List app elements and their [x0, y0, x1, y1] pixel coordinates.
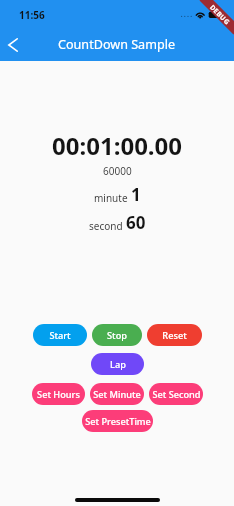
button[interactable]: Start: [33, 324, 87, 346]
button[interactable]: Set Second: [149, 383, 203, 405]
button[interactable]: Lap: [91, 353, 144, 375]
button[interactable]: Back: [0, 28, 26, 61]
staticText: CountDown Sample: [58, 36, 176, 53]
staticText: Reset: [162, 329, 187, 342]
staticText: second: [89, 219, 123, 233]
staticText: Lap: [110, 358, 126, 371]
button[interactable]: Set Minute: [90, 383, 144, 405]
staticText: 1: [131, 183, 141, 206]
button[interactable]: Stop: [92, 324, 142, 346]
staticText: Start: [49, 329, 71, 342]
staticText: Set Hours: [37, 388, 80, 401]
button[interactable]: Set Hours: [32, 383, 85, 405]
staticText: Stop: [107, 329, 127, 342]
button[interactable]: Set PresetTime: [82, 410, 153, 432]
staticText: Set Second: [152, 388, 201, 401]
staticText: DEBUG: [208, 3, 232, 27]
staticText: minute: [94, 191, 128, 205]
staticText: Set Minute: [93, 388, 141, 401]
staticText: 11:56: [19, 8, 45, 22]
button[interactable]: Reset: [147, 324, 202, 346]
staticText: 60000: [103, 164, 132, 178]
staticText: Set PresetTime: [85, 415, 151, 428]
staticText: 00:01:00.00: [52, 129, 183, 162]
staticText: 60: [126, 211, 146, 234]
